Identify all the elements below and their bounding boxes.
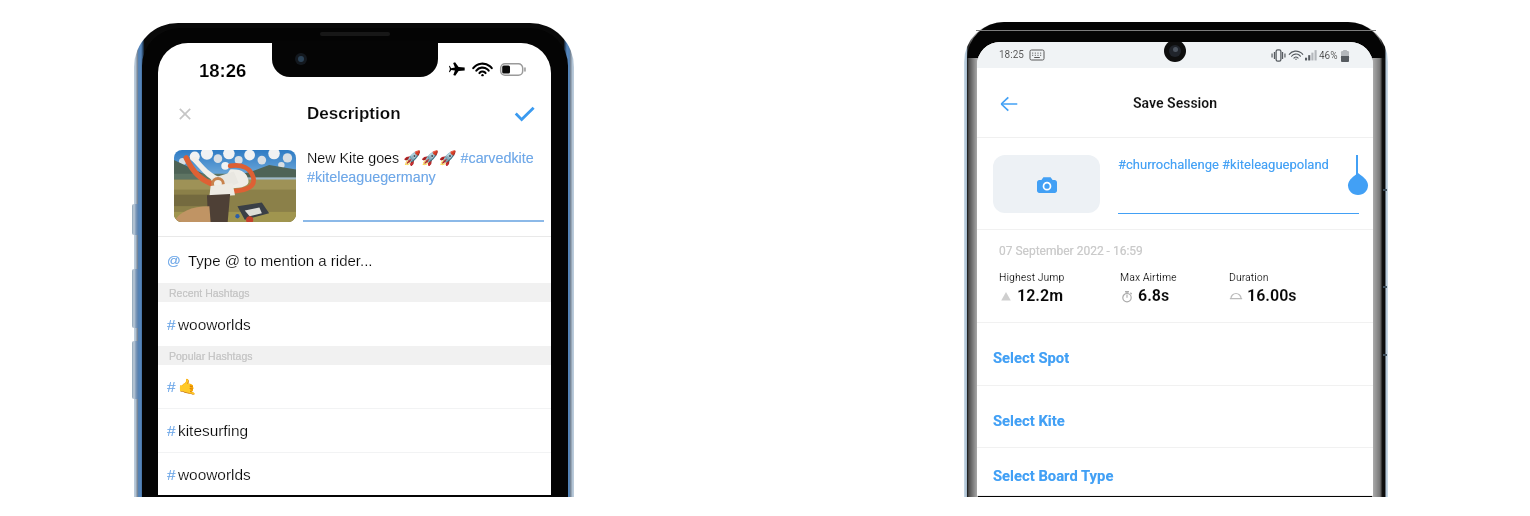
button[interactable]: # bbox=[158, 365, 551, 408]
staticText: Max Airtime bbox=[1120, 271, 1177, 283]
staticText: Popular Hashtags bbox=[169, 350, 253, 362]
staticText: # bbox=[167, 378, 176, 395]
staticText: #churrochallenge #kiteleaguepoland bbox=[1118, 157, 1329, 172]
staticText: Select Board Type bbox=[993, 467, 1114, 484]
button[interactable]: Confirm bbox=[508, 98, 540, 130]
staticText: Type @ to mention a rider... bbox=[188, 252, 373, 269]
button[interactable]: # bbox=[158, 453, 551, 495]
button[interactable]: @ bbox=[158, 237, 551, 283]
staticText: Select Kite bbox=[993, 412, 1065, 429]
button[interactable]: Select Spot bbox=[977, 323, 1373, 385]
staticText: 6.8s bbox=[1138, 286, 1170, 305]
staticText: Recent Hashtags bbox=[169, 287, 250, 299]
staticText: 🤙 bbox=[178, 378, 198, 396]
staticText: 46% bbox=[1319, 50, 1338, 62]
staticText: New Kite goes 🚀🚀🚀 #carvedkite #kiteleagu… bbox=[307, 150, 551, 185]
button[interactable]: # bbox=[158, 302, 551, 346]
button[interactable]: # bbox=[158, 409, 551, 452]
staticText: 12.2m bbox=[1017, 286, 1064, 305]
staticText: Select Spot bbox=[993, 349, 1070, 366]
button[interactable]: Add photo bbox=[993, 155, 1100, 213]
staticText: Description bbox=[307, 104, 401, 123]
staticText: # bbox=[167, 316, 176, 333]
staticText: # bbox=[167, 422, 176, 439]
staticText: Save Session bbox=[1133, 95, 1218, 111]
button[interactable]: Select Kite bbox=[977, 386, 1373, 447]
staticText: wooworlds bbox=[178, 316, 251, 333]
staticText: wooworlds bbox=[178, 466, 251, 483]
staticText: 18:25 bbox=[999, 49, 1024, 61]
staticText: @ bbox=[167, 253, 181, 268]
staticText: 18:26 bbox=[199, 60, 247, 81]
staticText: Duration bbox=[1229, 271, 1269, 283]
staticText: kitesurfing bbox=[178, 422, 249, 439]
staticText: 16.00s bbox=[1247, 286, 1297, 305]
button[interactable]: Select Board Type bbox=[977, 448, 1373, 495]
staticText: Highest Jump bbox=[999, 271, 1065, 283]
button[interactable]: Session photo bbox=[174, 150, 296, 222]
button[interactable]: Close bbox=[169, 98, 201, 130]
staticText: # bbox=[167, 466, 176, 483]
staticText: 07 September 2022 - 16:59 bbox=[999, 244, 1143, 258]
button[interactable]: Back bbox=[999, 94, 1019, 114]
